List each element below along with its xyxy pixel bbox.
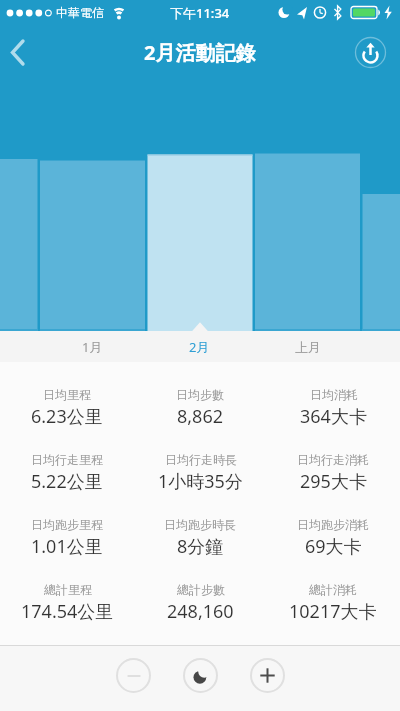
staticText: 總計里程 xyxy=(44,582,92,597)
staticText: 295大卡 xyxy=(300,469,367,494)
staticText: 10217大卡 xyxy=(289,599,377,624)
button[interactable] xyxy=(250,658,285,693)
staticText: 1月 xyxy=(82,338,103,356)
staticText: 248,160 xyxy=(167,599,234,624)
staticText: 日均行走消耗 xyxy=(297,452,369,467)
staticText: 日均里程 xyxy=(43,387,91,402)
staticText: 8分鐘 xyxy=(177,534,224,559)
staticText: 日均跑步消耗 xyxy=(297,517,369,532)
staticText: 日均消耗 xyxy=(310,387,358,402)
staticText: 總計消耗 xyxy=(309,582,357,597)
staticText: 8,862 xyxy=(177,404,224,429)
staticText: 日均跑步里程 xyxy=(31,517,103,532)
button[interactable] xyxy=(348,30,393,75)
staticText: 6.23公里 xyxy=(31,404,103,429)
staticText: 下午11:34 xyxy=(170,4,230,22)
staticText: 5.22公里 xyxy=(31,469,103,494)
button[interactable]: 1月 xyxy=(57,331,128,362)
button[interactable]: 上月 xyxy=(272,331,343,362)
staticText: 364大卡 xyxy=(300,404,367,429)
staticText: 日均行走里程 xyxy=(31,452,103,467)
staticText: 2月活動記錄 xyxy=(144,39,256,66)
staticText: 1.01公里 xyxy=(31,534,103,559)
staticText: 日均行走時長 xyxy=(165,452,237,467)
button[interactable] xyxy=(116,658,151,693)
staticText: 69大卡 xyxy=(305,534,362,559)
staticText: 2月 xyxy=(189,338,210,356)
staticText: 上月 xyxy=(295,339,321,355)
staticText: 日均跑步時長 xyxy=(164,517,236,532)
staticText: 日均步數 xyxy=(176,387,224,402)
staticText: 總計步數 xyxy=(177,582,225,597)
staticText: 中華電信 xyxy=(56,5,104,20)
staticText: 174.54公里 xyxy=(21,599,114,624)
button[interactable]: 2月 xyxy=(164,331,235,362)
button[interactable] xyxy=(0,31,44,75)
button[interactable] xyxy=(183,658,218,693)
staticText: 1小時35分 xyxy=(158,469,243,494)
